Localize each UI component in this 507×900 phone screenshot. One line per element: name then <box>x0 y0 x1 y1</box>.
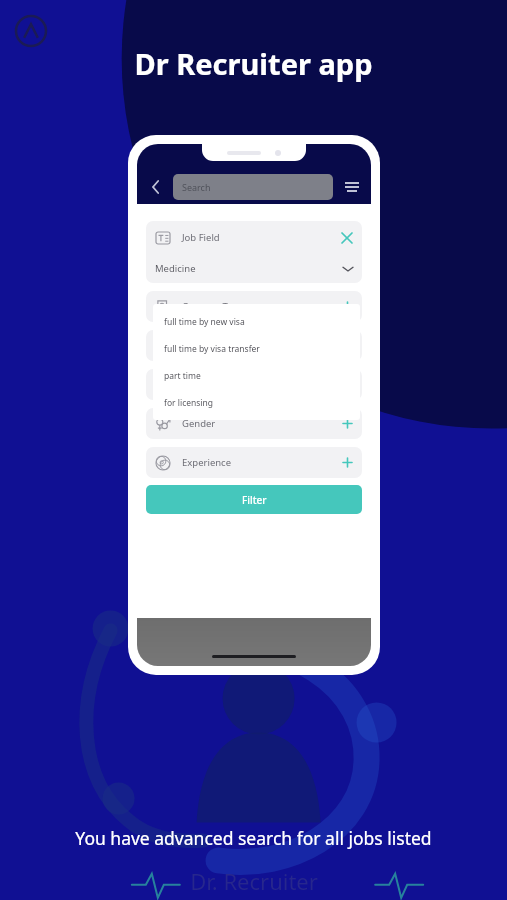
staticText: City <box>182 378 199 391</box>
button[interactable]: full time by new visa <box>153 308 360 335</box>
staticText: part time <box>164 370 201 382</box>
staticText: full time by new visa <box>164 316 245 328</box>
other: Clear Job Field <box>341 232 353 244</box>
button[interactable]: full time by visa transfer <box>153 335 360 362</box>
staticText: Dr Recruiter app <box>0 44 507 83</box>
button[interactable]: for licensing <box>153 389 360 416</box>
staticText: Search <box>182 181 211 193</box>
button[interactable]: Menu <box>341 176 363 198</box>
staticText: Experience <box>182 456 232 469</box>
other: App logo <box>14 14 48 48</box>
button[interactable]: Job Field <box>146 221 362 283</box>
other: Add Contract Type <box>342 301 353 312</box>
button[interactable]: part time <box>153 362 360 389</box>
staticText: Gender <box>182 417 216 430</box>
button[interactable]: Experience <box>146 447 362 478</box>
staticText: full time by visa transfer <box>164 343 260 355</box>
staticText: You have advanced search for all jobs li… <box>0 826 507 850</box>
button[interactable]: City <box>146 369 362 400</box>
staticText: Medicine <box>155 262 196 275</box>
button[interactable]: Add <box>146 330 362 361</box>
button[interactable]: Back <box>145 176 167 198</box>
staticText: Dr. Recruiter <box>190 866 318 896</box>
button[interactable]: Filter <box>146 485 362 514</box>
button[interactable]: Contract Type <box>146 291 362 322</box>
other: Add Experience <box>342 457 353 468</box>
button[interactable]: Gender <box>146 408 362 439</box>
button[interactable]: Search <box>173 174 333 200</box>
other: Add Gender <box>342 418 353 429</box>
staticText: for licensing <box>164 397 214 409</box>
staticText: Filter <box>242 493 267 507</box>
staticText: Job Field <box>182 231 220 244</box>
staticText: Contract Type <box>182 300 244 313</box>
